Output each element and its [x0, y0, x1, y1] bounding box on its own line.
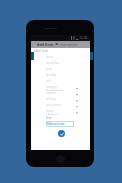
button[interactable]: Save	[58, 130, 65, 137]
button[interactable]: quantity	[46, 73, 78, 79]
staticText: Travel stock	[46, 89, 63, 91]
staticText: price	[46, 67, 53, 71]
staticText: Manual note	[47, 122, 65, 126]
button[interactable]: Add Item	[31, 41, 90, 48]
staticText: location	[46, 91, 56, 95]
button[interactable]: category	[46, 85, 78, 91]
staticText: ⚑	[55, 42, 59, 47]
button[interactable]: price	[46, 67, 78, 73]
staticText: ( Select )	[46, 113, 58, 115]
staticText: quantity	[46, 73, 57, 77]
staticText: description	[60, 43, 77, 47]
staticText: Add Item	[37, 42, 54, 47]
button[interactable]: unit	[46, 79, 78, 85]
staticText: unit tag	[46, 97, 56, 101]
button[interactable]: status	[46, 109, 78, 115]
staticText: name	[46, 55, 53, 59]
staticText: description	[46, 61, 60, 65]
staticText: Note	[46, 116, 52, 120]
button[interactable]: group name	[46, 103, 78, 109]
button[interactable]: unit tag	[46, 97, 78, 103]
button[interactable]: location	[46, 91, 78, 97]
button[interactable]: description	[46, 61, 78, 67]
staticText: status	[46, 109, 54, 113]
staticText: ▍▍▂ 12:30	[71, 36, 88, 40]
button[interactable]: Manual note	[46, 121, 74, 127]
button[interactable]: name	[46, 55, 78, 61]
staticText: unit	[46, 79, 51, 83]
staticText: label text	[34, 49, 48, 53]
staticText: category	[46, 85, 57, 89]
staticText: group name	[46, 103, 62, 107]
